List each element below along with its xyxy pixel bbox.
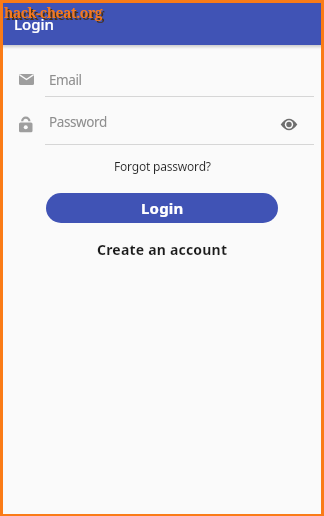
button[interactable] <box>278 113 300 135</box>
staticText: Email <box>49 71 82 89</box>
button[interactable]: Create an account <box>97 240 228 259</box>
staticText: hack-cheat.org <box>4 3 103 22</box>
button[interactable]: Forgot password? <box>114 158 211 174</box>
staticText: Password <box>49 113 107 131</box>
button[interactable]: Login <box>46 193 278 223</box>
staticText: Login <box>141 198 184 218</box>
staticText: Login <box>14 14 54 34</box>
staticText: hack-cheat.org <box>6 5 105 24</box>
